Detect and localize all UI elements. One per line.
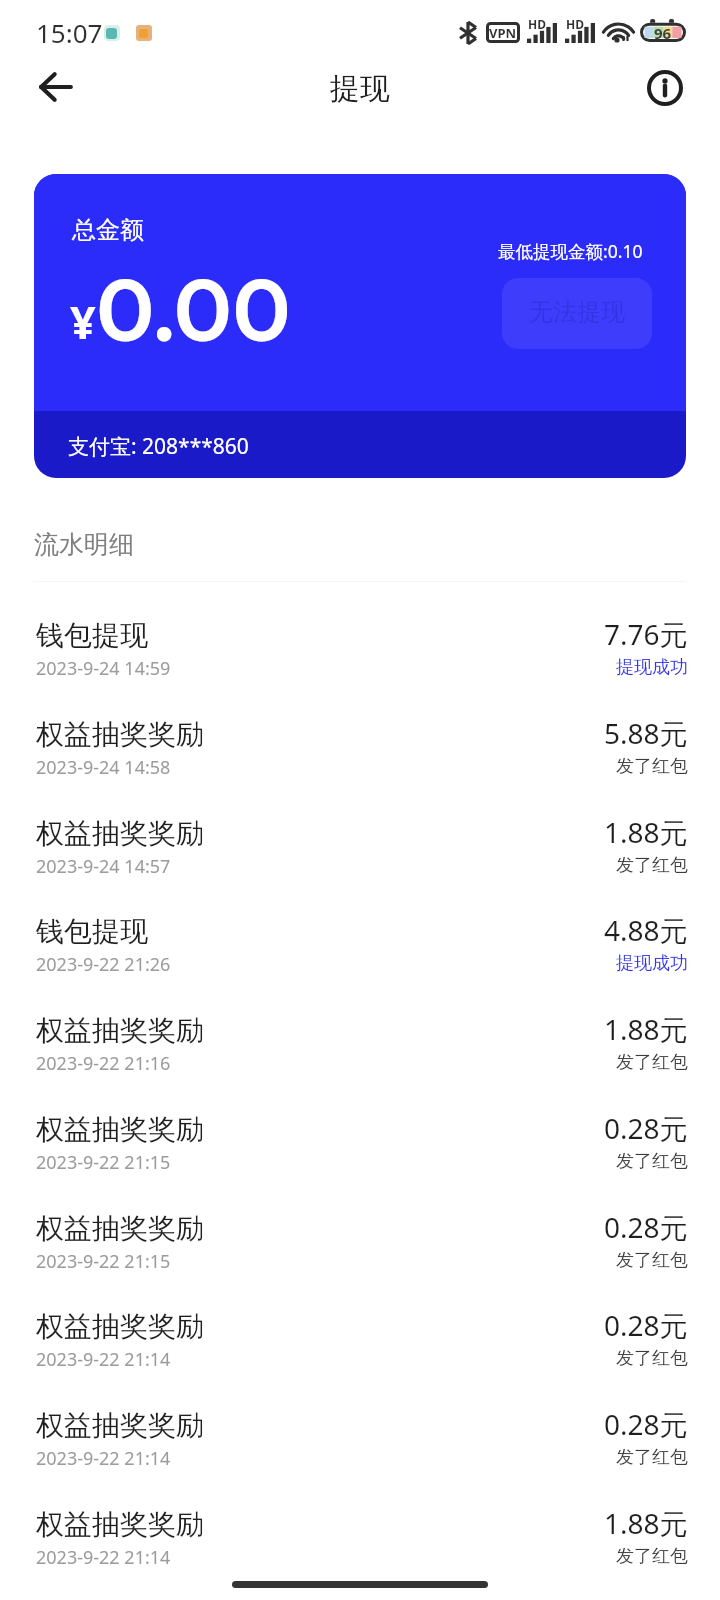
staticText: 发了红包 (616, 1150, 688, 1173)
button[interactable]: Info (635, 58, 695, 118)
button[interactable]: Back (26, 57, 86, 117)
staticText: 96 (654, 23, 672, 43)
staticText: 4.88元 (604, 911, 688, 949)
staticText: 权益抽奖奖励 (36, 717, 204, 752)
staticText: 提现成功 (616, 656, 688, 679)
button[interactable]: 钱包提现 (0, 578, 720, 677)
button[interactable]: 权益抽奖奖励 (0, 1072, 720, 1171)
staticText: HD (566, 16, 584, 32)
staticText: 2023-9-24 14:59 (36, 656, 171, 681)
button[interactable]: 权益抽奖奖励 (0, 1467, 720, 1566)
staticText: 钱包提现 (36, 914, 148, 949)
staticText: 发了红包 (616, 1249, 688, 1272)
staticText: 0.28元 (604, 1208, 688, 1246)
staticText: 15:07 (36, 15, 103, 50)
staticText: 发了红包 (616, 1347, 688, 1370)
staticText: 总金额 (72, 215, 144, 245)
staticText: 最低提现金额:0.10 (498, 239, 643, 263)
button[interactable]: 钱包提现 (0, 874, 720, 973)
staticText: ¥ (70, 291, 96, 352)
staticText: 提现成功 (616, 952, 688, 975)
staticText: 权益抽奖奖励 (36, 1507, 204, 1542)
staticText: 2023-9-22 21:15 (36, 1150, 171, 1175)
button[interactable]: 权益抽奖奖励 (0, 973, 720, 1072)
staticText: 2023-9-24 14:57 (36, 854, 171, 879)
button[interactable]: 权益抽奖奖励 (0, 1171, 720, 1270)
button[interactable]: 权益抽奖奖励 (0, 1269, 720, 1368)
staticText: 权益抽奖奖励 (36, 1309, 204, 1344)
button[interactable]: 权益抽奖奖励 (0, 677, 720, 776)
staticText: 流水明细 (34, 529, 134, 560)
button[interactable]: 权益抽奖奖励 (0, 776, 720, 875)
staticText: 提现 (330, 70, 390, 108)
staticText: 钱包提现 (36, 618, 148, 653)
staticText: 2023-9-22 21:26 (36, 952, 171, 977)
staticText: 2023-9-22 21:14 (36, 1446, 171, 1471)
staticText: 权益抽奖奖励 (36, 1211, 204, 1246)
staticText: 发了红包 (616, 755, 688, 778)
staticText: 1.88元 (604, 1010, 688, 1048)
button[interactable]: 权益抽奖奖励 (0, 1368, 720, 1467)
staticText: 0.28元 (604, 1109, 688, 1147)
staticText: 权益抽奖奖励 (36, 1408, 204, 1443)
staticText: 7.76元 (604, 615, 688, 653)
staticText: 2023-9-22 21:16 (36, 1051, 171, 1076)
staticText: 权益抽奖奖励 (36, 816, 204, 851)
staticText: 发了红包 (616, 1545, 688, 1568)
staticText: 2023-9-24 14:58 (36, 755, 171, 780)
button[interactable]: 无法提现 (502, 278, 652, 349)
staticText: 1.88元 (604, 1504, 688, 1542)
staticText: 5.88元 (604, 714, 688, 752)
staticText: VPN (489, 24, 517, 42)
staticText: 0.28元 (604, 1306, 688, 1344)
staticText: HD (528, 16, 546, 32)
staticText: 1.88元 (604, 813, 688, 851)
staticText: 2023-9-22 21:15 (36, 1249, 171, 1274)
staticText: 支付宝: 208***860 (68, 432, 249, 461)
staticText: 0.00 (96, 257, 291, 363)
staticText: 发了红包 (616, 854, 688, 877)
staticText: 0.28元 (604, 1405, 688, 1443)
staticText: 权益抽奖奖励 (36, 1013, 204, 1048)
staticText: 无法提现 (529, 297, 625, 327)
staticText: 2023-9-22 21:14 (36, 1545, 171, 1570)
staticText: 权益抽奖奖励 (36, 1112, 204, 1147)
staticText: 发了红包 (616, 1446, 688, 1469)
staticText: 2023-9-22 21:14 (36, 1347, 171, 1372)
staticText: 发了红包 (616, 1051, 688, 1074)
